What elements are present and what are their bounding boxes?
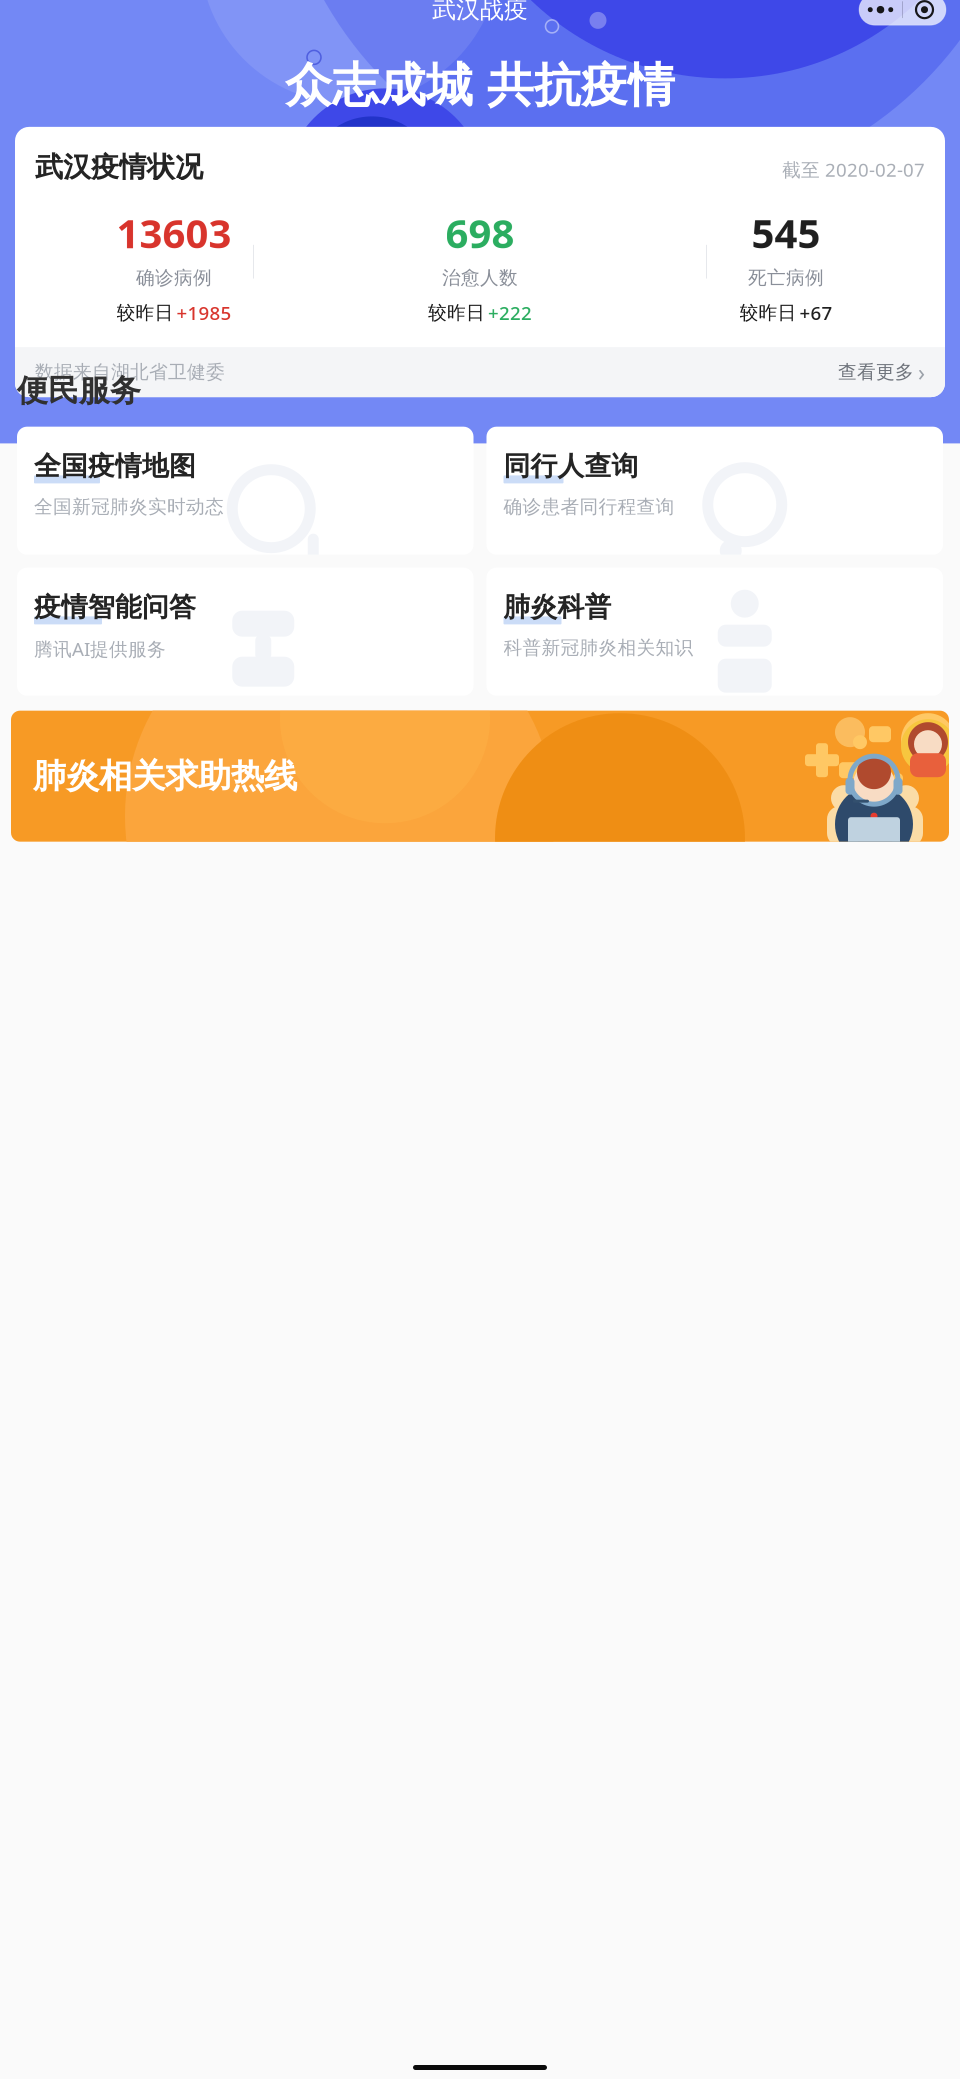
staticText: 较昨日 <box>428 301 485 324</box>
staticText: 腾讯AI提供服务 <box>34 636 166 661</box>
staticText: +222 <box>488 300 532 325</box>
button[interactable]: 全国疫情地图 <box>17 427 473 555</box>
staticText: › <box>918 357 925 387</box>
staticText: 全国新冠肺炎实时动态 <box>34 495 224 518</box>
staticText: 确诊患者同行程查询 <box>503 495 674 518</box>
staticText: 较昨日 <box>739 301 796 324</box>
staticText: 查看更多 <box>838 361 914 383</box>
button[interactable]: 数据来自湖北省卫健委 <box>15 347 945 397</box>
staticText: 便民服务 <box>17 372 141 410</box>
button[interactable]: 同行人查询 <box>486 427 943 555</box>
staticText: 545 <box>751 206 820 259</box>
button[interactable]: 肺炎相关求助热线 <box>11 711 949 842</box>
staticText: 确诊病例 <box>136 266 212 289</box>
staticText: 武汉疫情状况 <box>35 150 203 184</box>
staticText: 肺炎科普 <box>503 591 611 623</box>
staticText: 同行人查询 <box>503 450 638 482</box>
staticText: 较昨日 <box>116 301 173 324</box>
staticText: 死亡病例 <box>748 266 824 289</box>
button[interactable]: More <box>859 0 902 25</box>
button[interactable]: 疫情智能问答 <box>17 568 473 696</box>
staticText: 698 <box>445 206 514 259</box>
staticText: 全国疫情地图 <box>34 450 196 482</box>
staticText: +67 <box>799 300 832 325</box>
staticText: +1985 <box>176 300 231 325</box>
staticText: 疫情智能问答 <box>34 591 196 623</box>
staticText: 众志成城 共抗疫情 <box>285 57 675 114</box>
staticText: 治愈人数 <box>442 266 518 289</box>
staticText: 武汉战疫 <box>432 0 528 24</box>
button[interactable]: Close <box>903 0 946 25</box>
staticText: 截至 2020-02-07 <box>782 157 925 182</box>
staticText: 肺炎相关求助热线 <box>33 756 297 797</box>
button[interactable]: 肺炎科普 <box>486 568 943 696</box>
staticText: 13603 <box>116 206 231 259</box>
staticText: 科普新冠肺炎相关知识 <box>503 636 693 659</box>
staticText: 数据来自湖北省卫健委 <box>35 361 225 383</box>
